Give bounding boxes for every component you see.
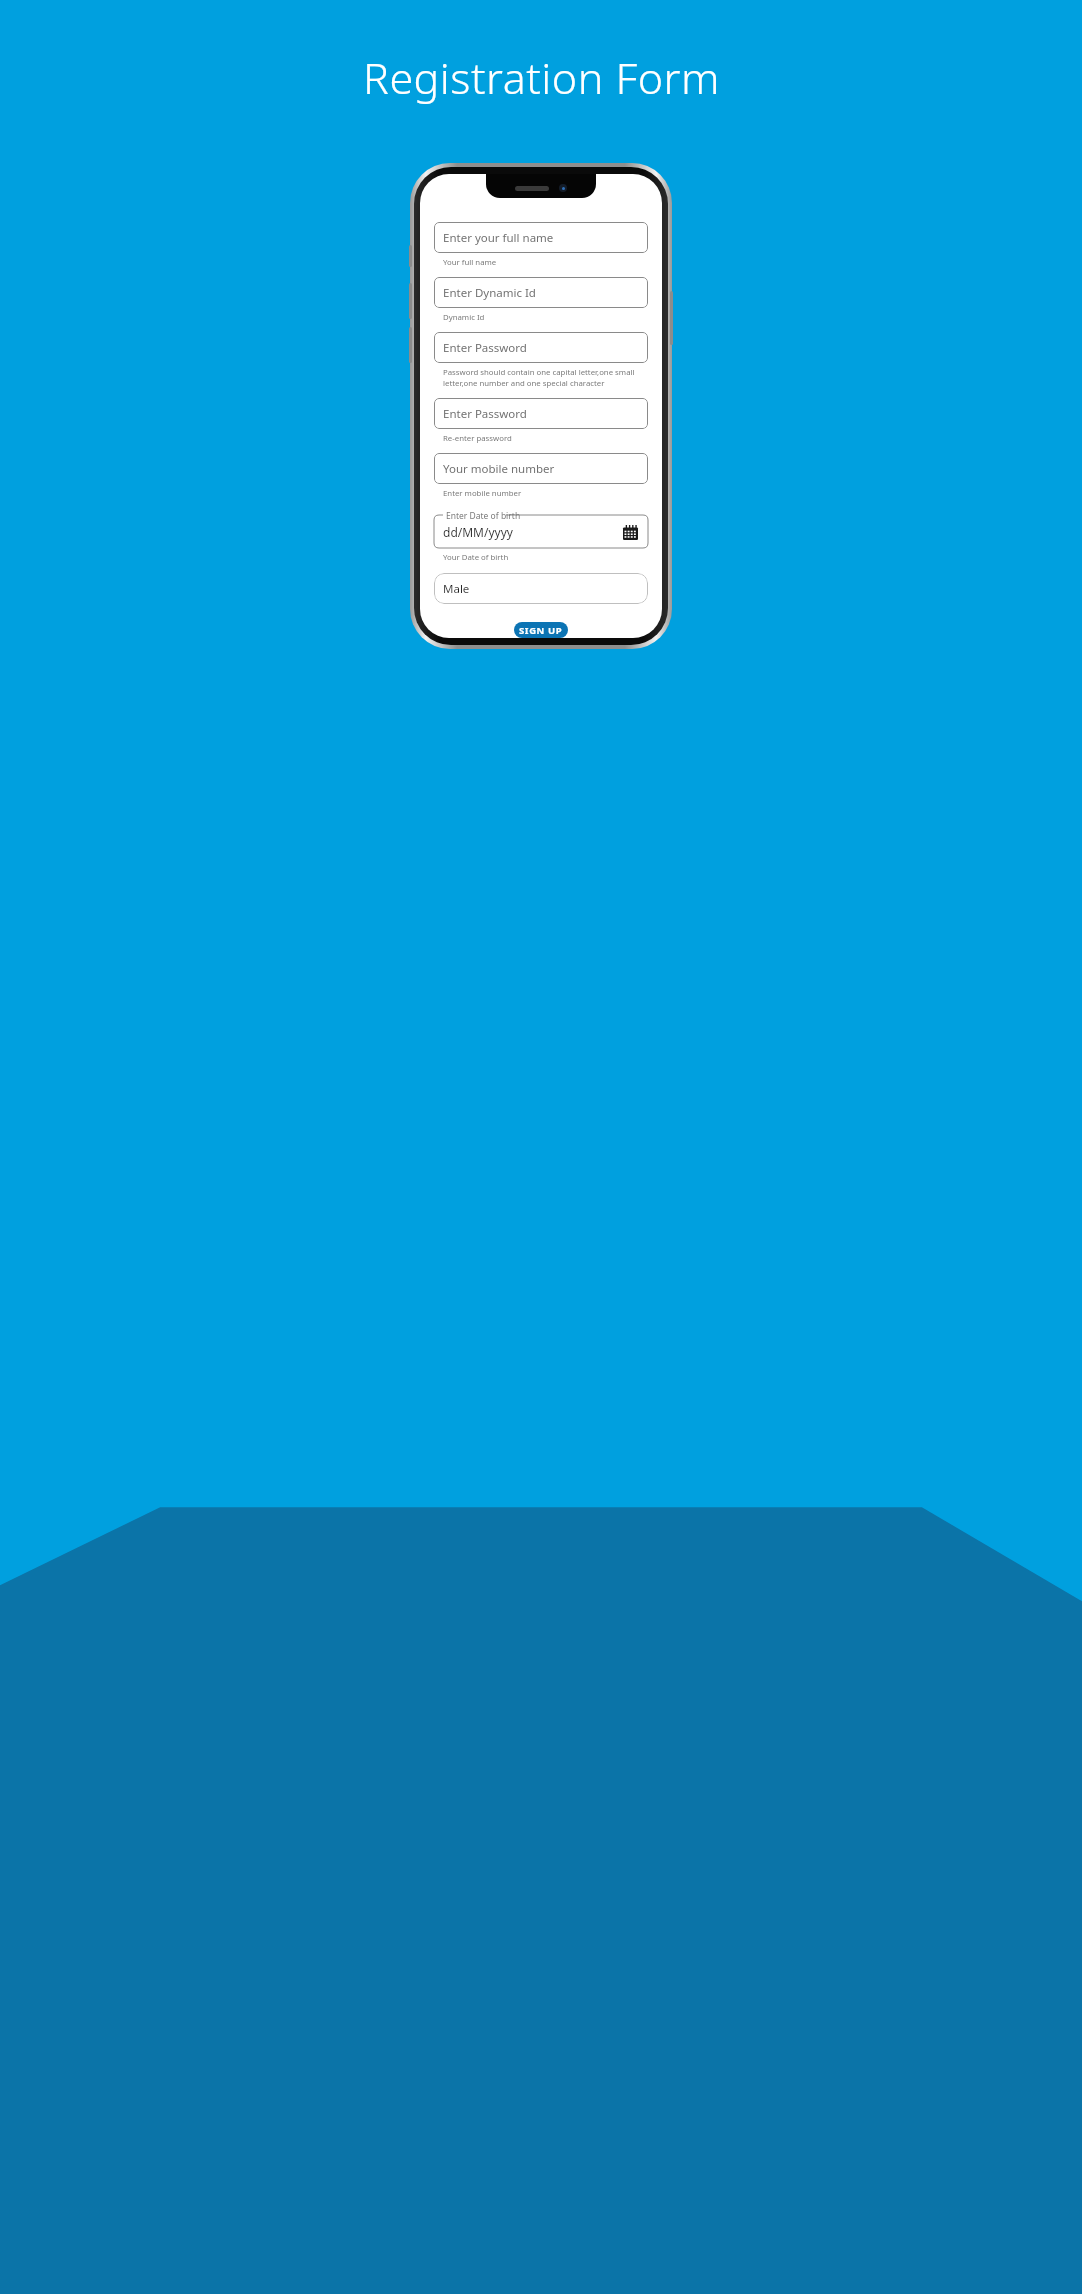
button[interactable]: SIGN UP: [514, 622, 568, 638]
staticText: Dynamic Id: [443, 312, 485, 323]
staticText: Enter Date of birth: [446, 510, 521, 522]
button[interactable]: Your mobile number: [434, 453, 648, 484]
button[interactable]: Pick date: [621, 523, 639, 541]
button[interactable]: Enter Dynamic Id: [434, 277, 648, 308]
staticText: Enter your full name: [443, 230, 554, 246]
staticText: Your Date of birth: [443, 552, 509, 563]
button[interactable]: Male: [434, 573, 648, 604]
staticText: Password should contain one capital lett…: [443, 367, 648, 389]
staticText: Re-enter password: [443, 433, 512, 444]
staticText: Your full name: [443, 257, 497, 268]
button[interactable]: Enter your full name: [434, 222, 648, 253]
staticText: Enter mobile number: [443, 488, 522, 499]
button[interactable]: Enter Password: [434, 398, 648, 429]
staticText: Enter Password: [443, 406, 527, 422]
staticText: Your mobile number: [443, 461, 555, 477]
staticText: dd/MM/yyyy: [443, 524, 513, 540]
button[interactable]: Enter Password: [434, 332, 648, 363]
staticText: Enter Password: [443, 340, 527, 356]
staticText: Registration Form: [363, 48, 720, 107]
staticText: Male: [443, 581, 470, 597]
staticText: Enter Dynamic Id: [443, 285, 536, 301]
staticText: SIGN UP: [519, 624, 563, 637]
